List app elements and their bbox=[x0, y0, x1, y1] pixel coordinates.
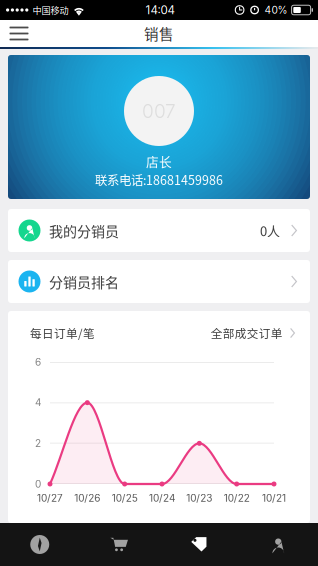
staticText: 联系电话:18681459986 bbox=[95, 170, 223, 188]
staticText: 10/25 bbox=[112, 492, 138, 504]
staticText: 14:04 bbox=[145, 3, 174, 17]
button[interactable]: Profile bbox=[238, 523, 318, 566]
staticText: 10/26 bbox=[74, 492, 100, 504]
staticText: 10/23 bbox=[186, 492, 212, 504]
staticText: 0 bbox=[35, 478, 41, 490]
staticText: 10/21 bbox=[262, 492, 286, 504]
staticText: 全部成交订单 bbox=[211, 325, 283, 341]
staticText: 中国移动 bbox=[32, 3, 68, 17]
staticText: 2 bbox=[35, 437, 41, 449]
button[interactable]: Discover bbox=[0, 523, 79, 566]
button[interactable]: 每日订单/笔 bbox=[8, 311, 310, 355]
staticText: 分销员排名 bbox=[49, 271, 119, 292]
staticText: 40% bbox=[265, 4, 288, 16]
staticText: 10/24 bbox=[149, 492, 175, 504]
staticText: 我的分销员 bbox=[49, 220, 119, 241]
staticText: 4 bbox=[35, 397, 41, 409]
staticText: 每日订单/笔 bbox=[30, 325, 95, 341]
button[interactable]: Products bbox=[159, 523, 238, 566]
button[interactable]: 分销员排名 bbox=[8, 260, 310, 303]
button[interactable]: Cart bbox=[79, 523, 159, 566]
button[interactable]: 我的分销员 bbox=[8, 209, 310, 252]
staticText: 0人 bbox=[260, 221, 280, 240]
staticText: 店长 bbox=[146, 152, 172, 170]
button[interactable]: Menu bbox=[0, 20, 38, 47]
staticText: 10/27 bbox=[37, 492, 63, 504]
staticText: 6 bbox=[35, 356, 41, 368]
staticText: 007 bbox=[142, 99, 176, 122]
staticText: 10/22 bbox=[224, 492, 250, 504]
staticText: 销售 bbox=[144, 23, 174, 44]
